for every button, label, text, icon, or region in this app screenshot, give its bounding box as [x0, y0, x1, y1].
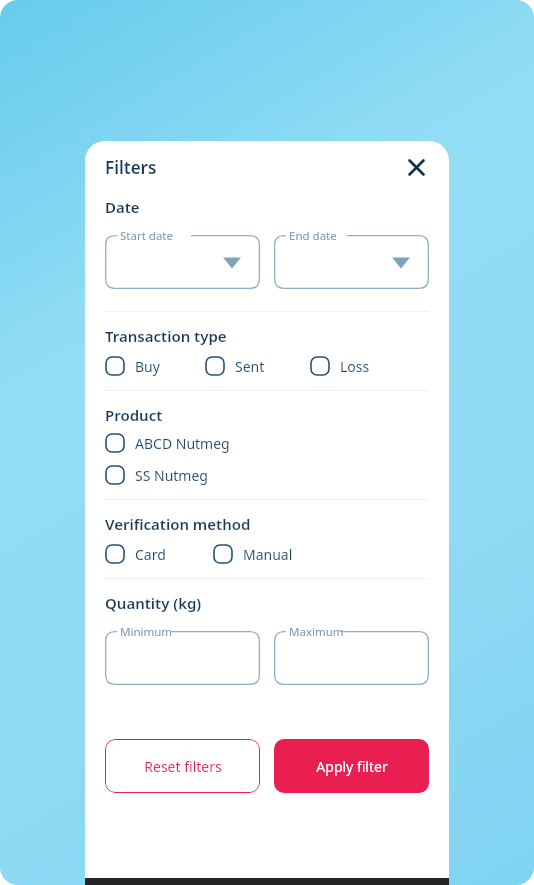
button[interactable]: SS Nutmeg	[105, 465, 208, 485]
staticText: Maximum	[289, 624, 344, 640]
staticText: Apply filter	[316, 757, 388, 776]
staticText: End date	[289, 228, 337, 244]
button[interactable]: Maximum	[274, 623, 429, 685]
staticText: ABCD Nutmeg	[135, 434, 230, 453]
button[interactable]: Reset filters	[105, 739, 260, 793]
button[interactable]: Card	[105, 544, 213, 564]
staticText: SS Nutmeg	[135, 466, 208, 485]
button[interactable]: End date	[274, 227, 429, 289]
button[interactable]: Minimum	[105, 623, 260, 685]
staticText: Product	[105, 405, 163, 425]
staticText: Buy	[135, 357, 160, 376]
staticText: Reset filters	[144, 757, 222, 776]
staticText: Manual	[243, 545, 293, 564]
staticText: Minimum	[120, 624, 173, 640]
button[interactable]: Start date	[105, 227, 260, 289]
button[interactable]: Buy	[105, 356, 205, 376]
button[interactable]: Loss	[310, 356, 405, 376]
staticText: Quantity (kg)	[105, 593, 202, 613]
staticText: Sent	[235, 357, 265, 376]
staticText: Start date	[120, 228, 173, 244]
button[interactable]: ABCD Nutmeg	[105, 433, 230, 453]
staticText: Filters	[105, 156, 157, 179]
staticText: Transaction type	[105, 326, 227, 346]
button[interactable]: Sent	[205, 356, 310, 376]
staticText: Loss	[340, 357, 370, 376]
staticText: Verification method	[105, 514, 251, 534]
button[interactable]: Close	[399, 150, 433, 184]
button[interactable]: Manual	[213, 544, 333, 564]
staticText: Card	[135, 545, 166, 564]
button[interactable]: Apply filter	[274, 739, 429, 793]
staticText: Date	[105, 197, 140, 217]
